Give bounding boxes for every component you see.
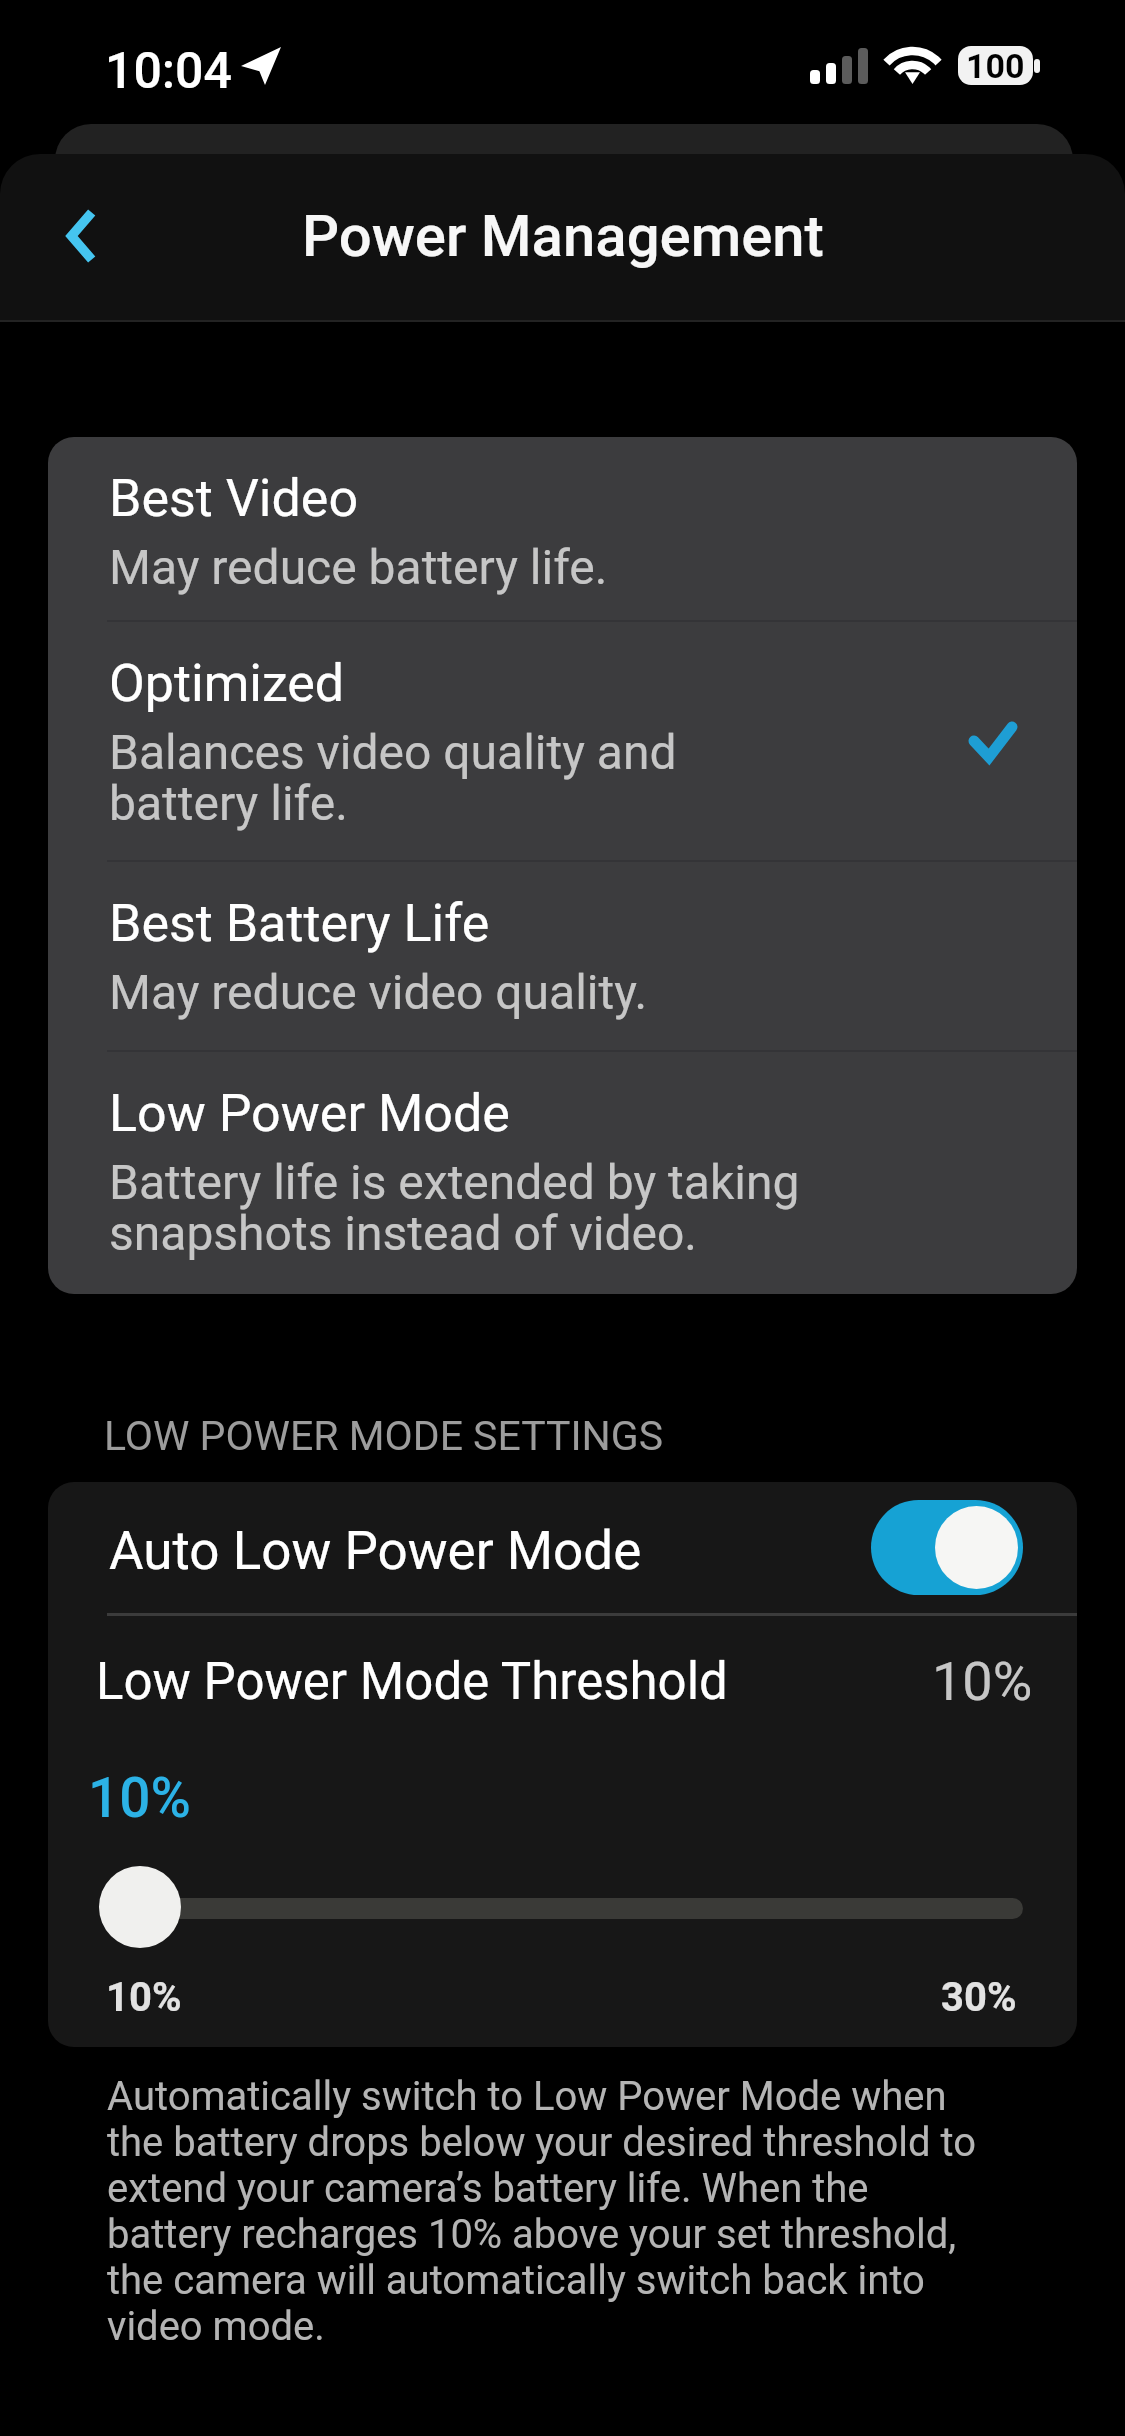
staticText: Automatically switch to Low Power Mode w… — [107, 2073, 997, 2350]
button[interactable]: Optimized — [48, 622, 1077, 860]
staticText: May reduce video quality. — [109, 964, 648, 1020]
button[interactable]: Best Battery Life — [48, 862, 1077, 1050]
staticText: Battery life is extended by taking snaps… — [109, 1154, 800, 1262]
staticText: 100 — [966, 46, 1025, 85]
staticText: LOW POWER MODE SETTINGS — [104, 1412, 664, 1460]
staticText: Best Video — [109, 468, 359, 529]
button[interactable]: Auto Low Power Mode — [48, 1482, 1077, 1613]
staticText: Best Battery Life — [109, 893, 490, 954]
staticText: Auto Low Power Mode — [109, 1520, 642, 1582]
staticText: 10:04 — [105, 42, 232, 101]
staticText: May reduce battery life. — [109, 539, 608, 595]
staticText: 10% — [932, 1650, 1033, 1713]
staticText: 30% — [941, 1974, 1017, 2021]
other: Selected — [968, 720, 1018, 765]
button[interactable]: Best Video — [48, 437, 1077, 620]
button[interactable]: Back — [14, 154, 124, 320]
other: Threshold slider — [99, 1866, 181, 1948]
staticText: 10% — [88, 1766, 191, 1830]
button[interactable]: Low Power Mode — [48, 1052, 1077, 1294]
staticText: Balances video quality and battery life. — [109, 724, 677, 832]
staticText: Low Power Mode — [109, 1083, 510, 1144]
staticText: 10% — [106, 1974, 182, 2021]
staticText: Optimized — [109, 653, 345, 714]
staticText: Power Management — [302, 202, 824, 270]
staticText: Low Power Mode Threshold — [96, 1652, 728, 1712]
other: Auto Low Power Mode — [871, 1500, 1023, 1595]
